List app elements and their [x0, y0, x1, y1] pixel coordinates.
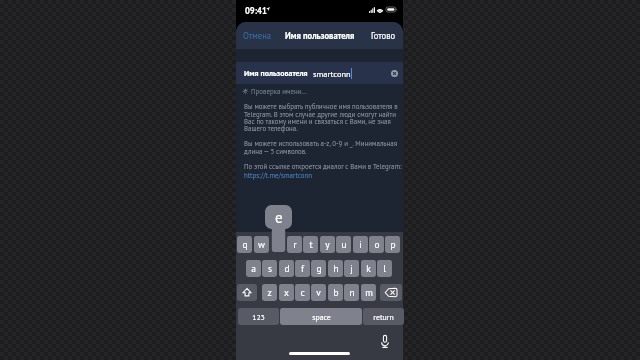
button[interactable]: b [328, 284, 343, 301]
staticText: 09:41 [245, 5, 267, 16]
button[interactable]: j [344, 260, 359, 277]
staticText: f [301, 262, 304, 274]
button[interactable]: Shift [237, 284, 257, 301]
staticText: smartconn [313, 68, 351, 79]
button[interactable]: i [353, 236, 368, 253]
staticText: return [373, 312, 394, 322]
button[interactable]: k [361, 260, 376, 277]
staticText: s [268, 262, 272, 274]
staticText: Вы можете выбрать публичное имя пользова… [244, 102, 398, 133]
button[interactable]: u [336, 236, 351, 253]
button[interactable]: https://t.me/smartconn [244, 171, 312, 180]
button[interactable]: space [280, 308, 362, 325]
staticText: Вы можете использовать a-z, 0-9 и _. Мин… [244, 139, 397, 156]
button[interactable]: g [311, 260, 326, 277]
staticText: u [341, 238, 347, 250]
staticText: x [284, 286, 289, 298]
staticText: t [309, 238, 313, 250]
staticText: k [366, 262, 371, 274]
button[interactable]: p [385, 236, 400, 253]
button[interactable]: n [344, 284, 359, 301]
button[interactable]: Отмена [236, 25, 279, 46]
button[interactable]: y [320, 236, 335, 253]
staticText: n [349, 286, 355, 298]
button[interactable]: s [262, 260, 277, 277]
button[interactable]: Backspace [380, 284, 402, 301]
staticText: p [390, 238, 396, 250]
staticText: v [316, 286, 321, 298]
staticText: q [242, 238, 248, 250]
button[interactable]: l [377, 260, 392, 277]
button[interactable]: x [279, 284, 294, 301]
staticText: y [325, 238, 330, 250]
button[interactable]: 123 [238, 308, 279, 325]
staticText: w [258, 238, 265, 250]
staticText: i [359, 238, 362, 250]
button[interactable]: m [361, 284, 376, 301]
staticText: h [333, 262, 339, 274]
button[interactable]: h [328, 260, 343, 277]
staticText: https://t.me/smartconn [244, 171, 312, 180]
button[interactable]: f [295, 260, 310, 277]
button[interactable]: Готово [364, 25, 403, 46]
staticText: z [267, 286, 272, 298]
staticText: j [350, 262, 353, 274]
button[interactable]: Clear text [391, 70, 398, 77]
staticText: m [365, 286, 373, 298]
button[interactable]: o [369, 236, 384, 253]
staticText: l [383, 262, 386, 274]
button[interactable]: w [254, 236, 269, 253]
staticText: 123 [252, 312, 265, 322]
staticText: Проверка имени... [251, 87, 307, 96]
staticText: a [251, 262, 256, 274]
button[interactable]: c [295, 284, 310, 301]
button[interactable]: r [287, 236, 302, 253]
button[interactable]: return [363, 308, 404, 325]
staticText: b [333, 286, 339, 298]
staticText: Отмена [243, 30, 272, 41]
staticText: Готово [371, 30, 396, 41]
staticText: g [316, 262, 322, 274]
other: Dictation [381, 335, 389, 348]
staticText: space [312, 312, 331, 322]
staticText: c [300, 286, 305, 298]
button[interactable]: z [262, 284, 277, 301]
button[interactable]: v [311, 284, 326, 301]
staticText: d [284, 262, 290, 274]
staticText: По этой ссылке откроется диалог с Вами в… [244, 162, 402, 171]
button[interactable]: Имя пользователя [236, 62, 403, 84]
staticText: e [275, 208, 283, 227]
staticText: Имя пользователя [285, 30, 355, 41]
button[interactable]: q [237, 236, 252, 253]
button[interactable]: d [279, 260, 294, 277]
staticText: r [293, 238, 297, 250]
button[interactable]: a [246, 260, 261, 277]
staticText: Имя пользователя [244, 68, 308, 78]
staticText: o [374, 238, 380, 250]
button[interactable]: t [303, 236, 318, 253]
